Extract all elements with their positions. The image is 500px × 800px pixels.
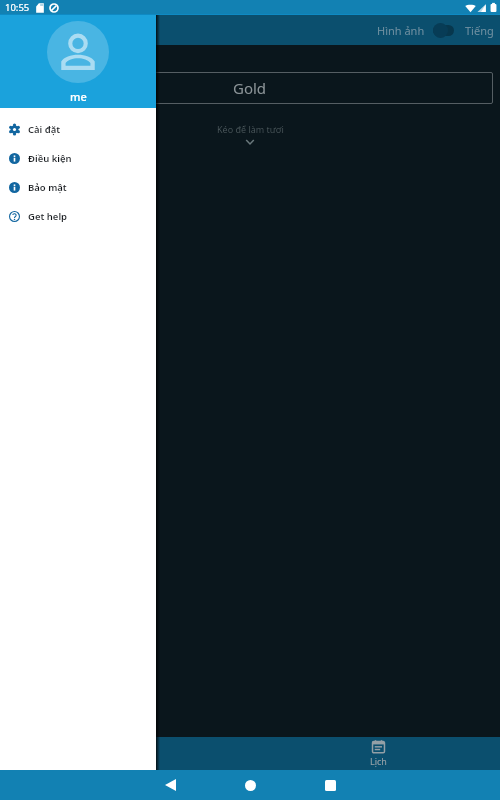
staticText: me	[70, 89, 87, 104]
staticText: Lịch	[370, 755, 387, 767]
staticText: Kéo để làm tươi	[217, 123, 284, 135]
staticText: Cài đặt	[28, 123, 61, 136]
other: Account avatar	[47, 21, 109, 83]
button[interactable]: Điều kiện	[0, 144, 156, 173]
staticText: 10:55	[5, 1, 30, 14]
staticText: Gold	[233, 78, 267, 98]
button[interactable]: Recents	[290, 770, 370, 800]
button[interactable]: Home	[210, 770, 290, 800]
staticText: Bảo mật	[28, 181, 67, 194]
button[interactable]: Cài đặt	[0, 115, 156, 144]
button[interactable]: Gold	[7, 72, 493, 104]
button[interactable]: Toggle image	[433, 23, 454, 38]
button[interactable]: Bảo mật	[0, 173, 156, 202]
button[interactable]: Back	[130, 770, 210, 800]
staticText: Get help	[28, 210, 68, 223]
button[interactable]: Get help	[0, 202, 156, 231]
button[interactable]: Account avatar	[0, 0, 156, 108]
button[interactable]: Lịch	[336, 737, 420, 770]
staticText: Điều kiện	[28, 152, 72, 165]
staticText: Hình ảnh	[377, 23, 425, 38]
staticText: Tiếng	[465, 23, 494, 38]
